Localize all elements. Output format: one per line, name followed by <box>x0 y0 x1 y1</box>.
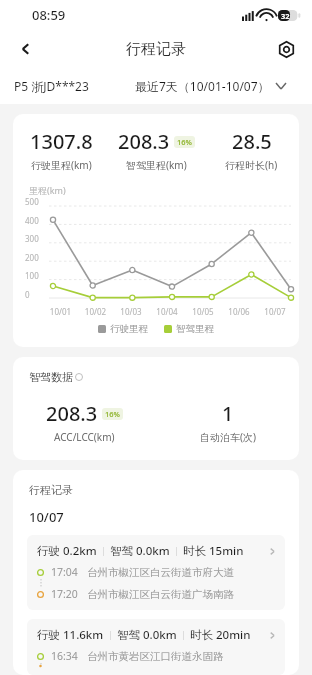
staticText: 时长 20min <box>190 627 251 643</box>
staticText: 行程记录 <box>29 483 73 497</box>
button[interactable]: 行驶 0.2km <box>27 535 285 610</box>
staticText: 08:59 <box>32 6 66 24</box>
staticText: 1 <box>222 400 234 427</box>
button[interactable]: 行驶 11.6km <box>27 619 285 675</box>
staticText: 10/02 <box>78 306 113 317</box>
staticText: 智驾 0.0km <box>117 627 177 643</box>
staticText: 10/06 <box>221 306 257 317</box>
staticText: 17:04 <box>51 565 78 579</box>
staticText: 32 <box>281 11 290 21</box>
staticText: 10/07 <box>29 508 64 526</box>
staticText: P5 浙JD***23 <box>14 78 89 94</box>
staticText: 自动泊车(次) <box>200 430 256 444</box>
staticText: 行驶里程 <box>110 323 148 335</box>
staticText: 台州市椒江区白云街道市府大道 <box>87 566 234 579</box>
staticText: 100 <box>25 270 39 281</box>
staticText: 16% <box>177 137 192 147</box>
staticText: 行驶 11.6km <box>37 627 104 643</box>
staticText: 28.5 <box>232 128 272 155</box>
staticText: 智驾里程 <box>176 323 214 335</box>
staticText: 208.3 <box>118 128 170 155</box>
staticText: 500 <box>25 196 39 207</box>
staticText: 里程(km) <box>29 184 66 196</box>
staticText: 300 <box>25 233 39 244</box>
button[interactable]: 智驾数据 <box>29 370 83 384</box>
button[interactable]: P5 浙JD***23 <box>14 78 89 94</box>
staticText: 400 <box>25 215 39 226</box>
staticText: 最近7天（10/01-10/07） <box>135 78 270 94</box>
staticText: 16:34 <box>51 649 78 663</box>
staticText: 行驶 0.2km <box>37 543 97 559</box>
staticText: 1307.8 <box>30 128 93 155</box>
button[interactable]: Settings <box>268 31 304 67</box>
staticText: 10/01 <box>43 306 78 317</box>
staticText: 智驾 0.0km <box>110 543 170 559</box>
staticText: 208.3 <box>46 400 98 427</box>
staticText: 时长 15min <box>183 543 244 559</box>
staticText: ACC/LCC(km) <box>54 430 115 444</box>
staticText: 10/04 <box>149 306 185 317</box>
staticText: 0 <box>25 289 30 300</box>
staticText: 台州市椒江区白云街道广场南路 <box>87 588 234 601</box>
staticText: 智驾里程(km) <box>126 158 187 172</box>
button[interactable]: Back <box>8 31 44 67</box>
staticText: 行程时长(h) <box>225 158 278 172</box>
staticText: 10/07 <box>257 306 293 317</box>
staticText: 10/03 <box>113 306 149 317</box>
staticText: 行程记录 <box>126 40 186 59</box>
staticText: 200 <box>25 252 39 263</box>
button[interactable]: 最近7天（10/01-10/07） <box>135 78 286 94</box>
staticText: 智驾数据 <box>29 370 73 384</box>
staticText: 10/05 <box>185 306 221 317</box>
staticText: 行驶里程(km) <box>31 158 92 172</box>
staticText: 台州市黄岩区江口街道永固路 <box>87 650 224 663</box>
staticText: 17:20 <box>51 587 78 601</box>
staticText: 16% <box>105 409 120 419</box>
